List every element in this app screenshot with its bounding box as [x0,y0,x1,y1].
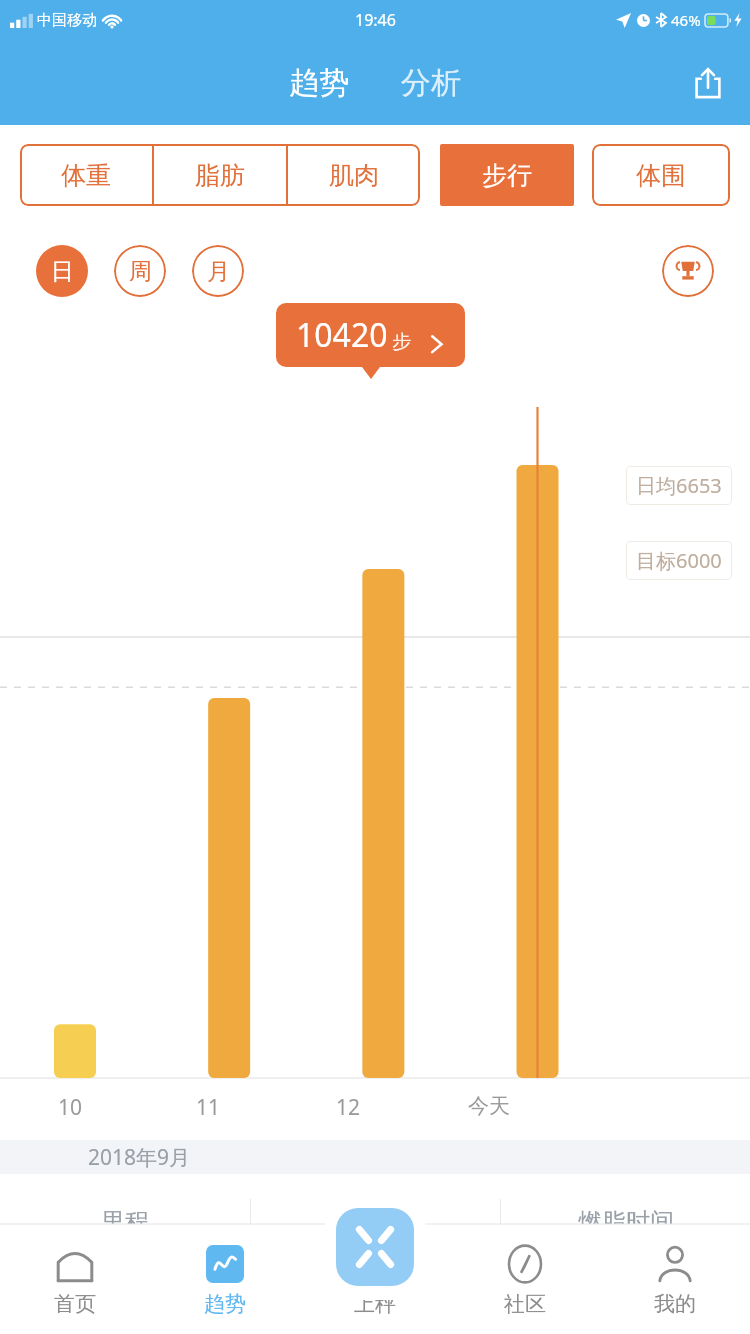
button[interactable]: 我的 [600,1224,750,1334]
staticText: 10 [58,1093,83,1122]
staticText: 2018年9月 [88,1143,191,1172]
staticText: 19:46 [355,9,396,31]
button[interactable]: 燃脂时间 [501,1174,750,1334]
staticText: 周 [129,257,152,286]
staticText: 日 [51,257,74,286]
button[interactable]: 首页 [0,1224,150,1334]
button[interactable]: 脂肪 [154,144,286,206]
staticText: 10420 [296,313,388,357]
staticText: Kcal [387,1272,426,1299]
button[interactable]: Achievements [662,245,714,297]
staticText: 日均6653 [636,472,722,499]
staticText: 我的 [654,1291,696,1317]
button[interactable]: 社区 [450,1224,600,1334]
button[interactable]: 上秤 [325,1196,425,1300]
button[interactable]: 步行 [440,144,574,206]
button[interactable]: 体重 [20,144,152,206]
staticText: 256 [325,1253,387,1302]
button[interactable]: 体围 [592,144,730,206]
staticText: 肌肉 [329,160,379,191]
button[interactable]: 日 [36,245,88,297]
button[interactable]: 肌肉 [288,144,420,206]
staticText: 分 [637,1274,657,1299]
button[interactable]: 月 [192,245,244,297]
staticText: 7.9 [84,1253,136,1302]
staticText: 今天 [468,1093,510,1119]
button[interactable]: 能量消耗 [251,1174,500,1334]
button[interactable]: 周 [114,245,166,297]
staticText: 上秤 [354,1291,396,1317]
staticText: 体围 [636,160,686,191]
button[interactable]: 上秤 [300,1224,450,1334]
button[interactable]: 10420 [276,303,465,367]
staticText: 目标6000 [636,547,722,574]
staticText: 燃脂时间 [578,1207,674,1237]
button[interactable]: 里程 [0,1174,250,1334]
staticText: 里程 [101,1207,149,1237]
staticText: 中国移动 [37,11,97,30]
staticText: 体重 [61,160,111,191]
staticText: 趋势 [289,64,349,102]
staticText: 社区 [504,1291,546,1317]
button[interactable]: 趋势 [281,58,357,108]
staticText: 分析 [401,64,461,102]
staticText: 11 [196,1093,221,1122]
button[interactable]: 分析 [393,58,469,108]
staticText: 步 [392,330,411,354]
staticText: 46% [671,10,701,30]
staticText: 脂肪 [195,160,245,191]
staticText: 12 [336,1093,361,1122]
staticText: 步行 [482,160,532,191]
staticText: 月 [207,257,230,286]
button[interactable]: Share [684,59,732,107]
button[interactable]: 趋势 [150,1224,300,1334]
staticText: 能量消耗 [328,1207,424,1237]
staticText: 趋势 [204,1291,246,1317]
staticText: 首页 [54,1291,96,1317]
